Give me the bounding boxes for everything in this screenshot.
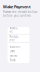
staticText: Memo [9,54,17,57]
staticText: Account [9,45,20,48]
staticText: Date [9,49,15,53]
staticText: Amount [9,26,18,33]
staticText: before you confirm. [3,14,31,17]
staticText: Recipient [9,35,19,42]
staticText: Make Payment [3,4,31,9]
staticText: Review the details below [3,10,37,14]
staticText: Total [9,58,15,62]
